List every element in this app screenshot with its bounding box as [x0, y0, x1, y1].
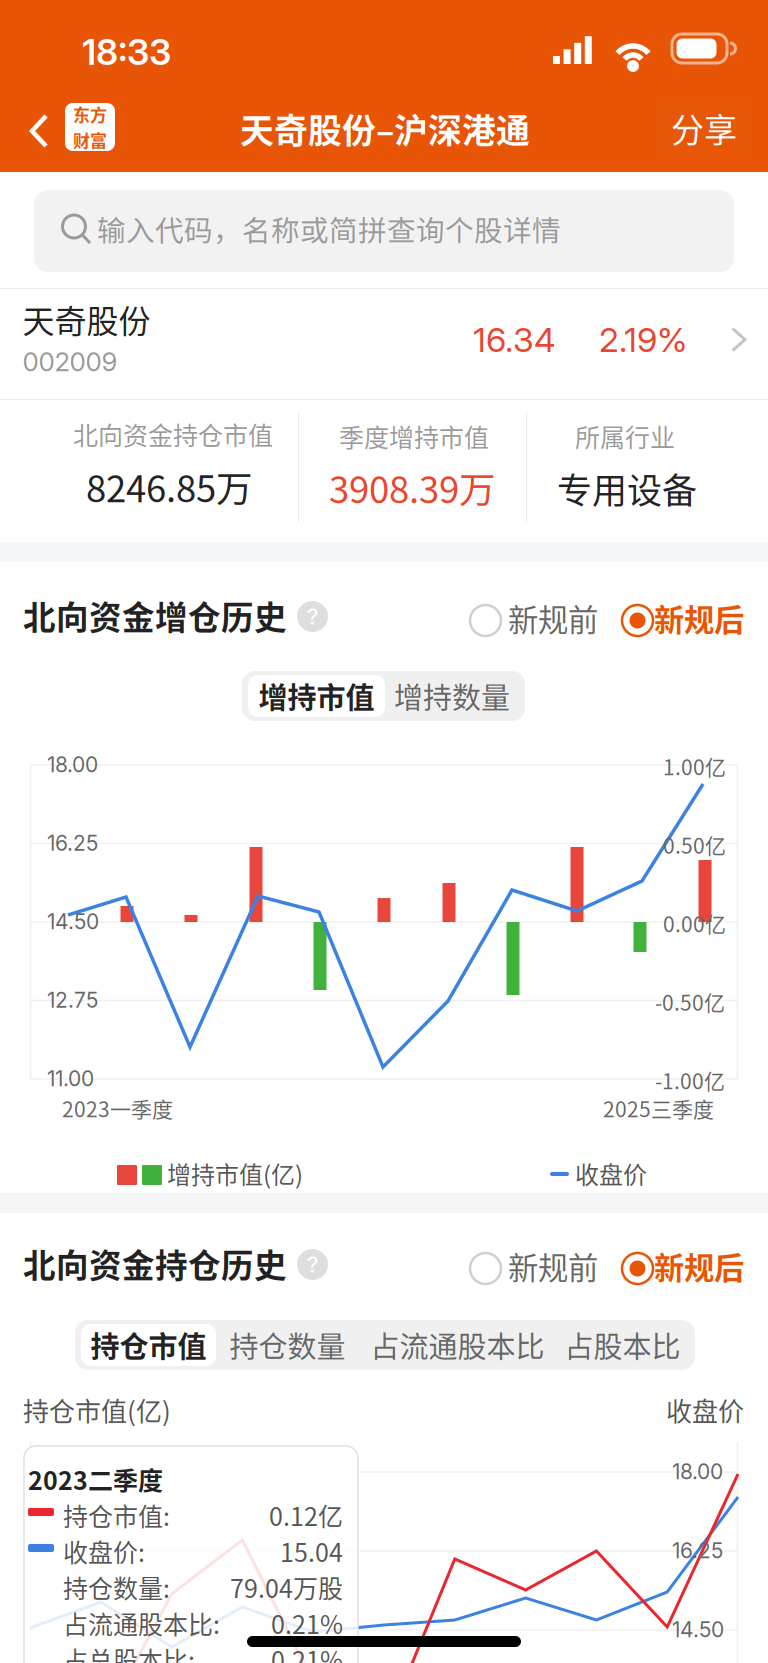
- staticText: 持仓市值(亿): [23, 1391, 171, 1429]
- staticText: 0.00亿: [663, 908, 726, 938]
- staticText: 2.19%: [599, 319, 687, 360]
- staticText: 北向资金持仓历史: [23, 1240, 287, 1287]
- staticText: 2025三季度: [603, 1093, 714, 1123]
- staticText: 专用设备: [557, 463, 697, 514]
- button[interactable]: 增持市值: [248, 671, 385, 721]
- button[interactable]: 返回: [16, 101, 62, 161]
- staticText: 新规后: [654, 596, 744, 640]
- staticText: 收盘价:: [63, 1533, 145, 1569]
- button[interactable]: 占流通股本比: [359, 1320, 556, 1370]
- staticText: 占股本比: [564, 1324, 680, 1366]
- button[interactable]: 天奇股份: [0, 289, 768, 399]
- staticText: 11.00: [47, 1066, 94, 1091]
- staticText: 新规前: [508, 596, 598, 640]
- button[interactable]: 占股本比: [556, 1320, 689, 1370]
- staticText: ?: [307, 1251, 318, 1278]
- button[interactable]: 新规前: [470, 1250, 598, 1286]
- staticText: 收盘价: [666, 1391, 744, 1429]
- staticText: 15.04: [280, 1533, 343, 1569]
- staticText: ?: [307, 603, 318, 630]
- staticText: 东方: [73, 102, 107, 126]
- staticText: 增持市值: [258, 675, 374, 717]
- staticText: 18.00: [672, 1459, 723, 1484]
- staticText: 0.50亿: [663, 829, 726, 860]
- staticText: 0.21%: [271, 1641, 343, 1663]
- button[interactable]: 新规前: [470, 602, 598, 638]
- staticText: 北向资金增仓历史: [23, 592, 287, 639]
- staticText: 占流通股本比: [370, 1324, 544, 1366]
- staticText: 8246.85万: [86, 460, 253, 513]
- button[interactable]: 分享: [661, 100, 747, 160]
- staticText: -0.50亿: [655, 986, 725, 1017]
- staticText: 持仓数量: [229, 1324, 345, 1366]
- staticText: 新规前: [508, 1244, 598, 1288]
- staticText: 12.75: [47, 987, 98, 1013]
- staticText: 持仓数量:: [63, 1569, 170, 1605]
- staticText: 季度增持市值: [339, 418, 489, 454]
- staticText: -1.00亿: [655, 1065, 725, 1095]
- button[interactable]: 输入代码，名称或简拼查询个股详情: [34, 190, 734, 272]
- button[interactable]: 增持数量: [385, 671, 519, 721]
- staticText: 增持数量: [394, 675, 510, 717]
- staticText: 0.21%: [271, 1605, 343, 1641]
- staticText: 16.25: [672, 1538, 723, 1563]
- staticText: 18.00: [47, 752, 98, 777]
- staticText: 持仓市值:: [63, 1497, 170, 1533]
- staticText: 0.12亿: [269, 1497, 343, 1533]
- staticText: 占流通股本比:: [63, 1605, 220, 1641]
- staticText: 3908.39万: [329, 461, 496, 514]
- staticText: 79.04万股: [230, 1569, 343, 1605]
- button[interactable]: 新规后: [620, 1250, 746, 1286]
- staticText: 持仓市值: [90, 1324, 206, 1366]
- staticText: 2023二季度: [28, 1461, 163, 1497]
- staticText: 分享: [671, 104, 737, 152]
- staticText: 增持市值(亿): [167, 1156, 303, 1191]
- staticText: 新规后: [654, 1244, 744, 1288]
- staticText: 天奇股份–沪深港通: [240, 104, 530, 153]
- staticText: 2023一季度: [62, 1093, 173, 1123]
- staticText: 1.00亿: [663, 751, 726, 781]
- button[interactable]: 持仓数量: [216, 1320, 359, 1370]
- button[interactable]: 说明: [297, 1249, 328, 1280]
- staticText: 占总股本比:: [63, 1641, 195, 1663]
- button[interactable]: 说明: [297, 601, 328, 632]
- staticText: 14.50: [47, 909, 99, 934]
- staticText: 16.34: [473, 319, 555, 360]
- staticText: 14.50: [672, 1617, 724, 1642]
- staticText: 收盘价: [575, 1156, 647, 1191]
- staticText: 16.25: [47, 830, 98, 856]
- staticText: 所属行业: [575, 418, 675, 454]
- staticText: 天奇股份: [22, 296, 150, 342]
- staticText: 输入代码，名称或简拼查询个股详情: [97, 208, 561, 249]
- button[interactable]: 新规后: [620, 602, 746, 638]
- staticText: 002009: [22, 346, 117, 377]
- staticText: 财富: [73, 127, 107, 152]
- button[interactable]: 持仓市值: [81, 1320, 216, 1370]
- staticText: 北向资金持仓市值: [73, 416, 273, 452]
- staticText: 18:33: [82, 30, 171, 74]
